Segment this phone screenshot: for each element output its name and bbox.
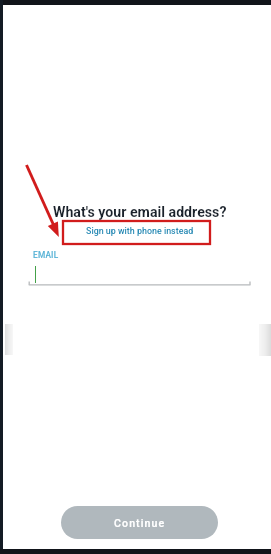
button[interactable]: Sign up with phone instead	[77, 223, 203, 239]
button[interactable]: Continue	[61, 506, 218, 539]
staticText: Continue	[114, 517, 166, 529]
staticText: What's your email address?	[53, 204, 227, 221]
button[interactable]: Email input field	[26, 260, 252, 286]
staticText: EMAIL	[33, 250, 59, 260]
staticText: Sign up with phone instead	[86, 226, 194, 236]
